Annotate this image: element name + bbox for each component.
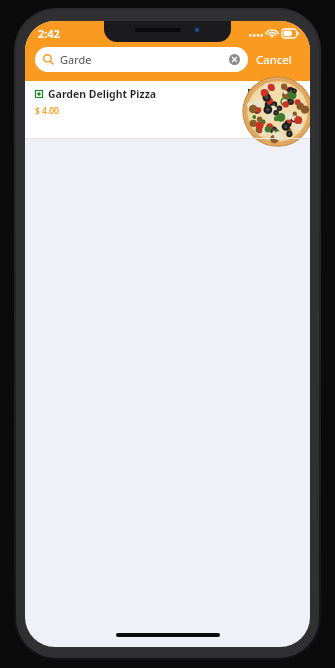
staticText: Garde (60, 52, 229, 67)
other: Garden Delight Pizza photo (248, 89, 305, 130)
staticText: 2:42 (38, 26, 60, 41)
staticText: $ 4.00 (35, 105, 59, 117)
button[interactable]: Garde (35, 47, 248, 72)
button[interactable]: Garden Delight Pizza (25, 81, 310, 138)
button[interactable]: Clear search (229, 54, 240, 65)
staticText: Cancel (256, 52, 292, 68)
staticText: Garden Delight Pizza (48, 87, 157, 101)
button[interactable]: Cancel (248, 48, 300, 72)
